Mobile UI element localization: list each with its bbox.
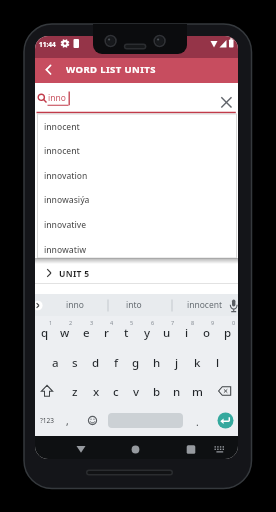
staticText: m (192, 384, 203, 400)
button[interactable]: w (55, 316, 75, 347)
button[interactable]: . (190, 414, 204, 430)
staticText: innovation (44, 170, 88, 182)
button[interactable]: d (86, 348, 106, 378)
staticText: p (224, 325, 232, 341)
staticText: h (153, 355, 161, 371)
button[interactable] (179, 438, 203, 458)
staticText: ?123 (40, 416, 54, 425)
button[interactable]: g (126, 348, 146, 378)
staticText: l (216, 355, 220, 371)
staticText: 4 (110, 319, 114, 326)
button[interactable] (108, 406, 183, 436)
button[interactable]: k (187, 348, 207, 378)
button[interactable]: y (137, 316, 157, 347)
staticText: g (132, 355, 140, 371)
staticText: d (92, 355, 100, 371)
button[interactable] (216, 92, 237, 113)
staticText: 1 (49, 319, 53, 326)
button[interactable] (41, 62, 57, 78)
staticText: innowatiw (44, 244, 87, 256)
button[interactable]: ?123 (36, 412, 58, 429)
button[interactable] (35, 377, 65, 406)
staticText: 9 (211, 319, 215, 326)
staticText: 5 (130, 319, 134, 326)
button[interactable]: innowatiw (38, 238, 236, 262)
staticText: w (60, 325, 70, 341)
button[interactable]: innocent (180, 296, 230, 314)
button[interactable]: innocent (38, 115, 236, 139)
button[interactable]: n (167, 377, 187, 406)
button[interactable]: h (147, 348, 167, 378)
staticText: . (196, 415, 199, 429)
button[interactable]: z (65, 377, 85, 406)
staticText: v (133, 384, 140, 400)
button[interactable]: p (218, 316, 238, 347)
staticText: 3 (90, 319, 94, 326)
button[interactable]: innovative (38, 213, 236, 237)
staticText: f (114, 355, 119, 371)
staticText: j (175, 355, 179, 371)
staticText: k (194, 355, 201, 371)
staticText: innocent (187, 299, 223, 311)
staticText: q (41, 325, 49, 341)
staticText: , (66, 414, 69, 428)
staticText: 7 (171, 319, 175, 326)
button[interactable]: r (96, 316, 116, 347)
button[interactable]: into (109, 296, 159, 314)
button[interactable]: e (76, 316, 96, 347)
staticText: 8 (191, 319, 195, 326)
button[interactable]: u (157, 316, 177, 347)
staticText: 6 (151, 319, 155, 326)
button[interactable]: innovation (38, 164, 236, 188)
button[interactable] (209, 438, 231, 458)
button[interactable] (124, 438, 148, 458)
button[interactable]: a (45, 348, 65, 378)
button[interactable]: inno (50, 296, 100, 314)
button[interactable]: i (177, 316, 197, 347)
button[interactable]: q (35, 316, 55, 347)
staticText: n (173, 384, 181, 400)
button[interactable]: l (208, 348, 228, 378)
button[interactable]: v (126, 377, 146, 406)
staticText: a (52, 355, 59, 371)
button[interactable] (214, 409, 237, 432)
staticText: inno (66, 299, 84, 311)
staticText: i (185, 325, 189, 341)
staticText: 0 (232, 319, 236, 326)
staticText: innocent (44, 145, 80, 157)
staticText: r (104, 325, 109, 341)
button[interactable]: s (65, 348, 85, 378)
button[interactable]: t (116, 316, 136, 347)
staticText: into (126, 299, 142, 311)
button[interactable]: innowasiýa (38, 188, 236, 212)
staticText: u (163, 325, 171, 341)
button[interactable] (69, 438, 93, 458)
button[interactable]: o (197, 316, 217, 347)
staticText: t (124, 325, 129, 341)
staticText: e (83, 325, 90, 341)
staticText: b (153, 384, 161, 400)
staticText: 11:44 (39, 40, 56, 49)
button[interactable]: innocent (38, 139, 236, 163)
staticText: innovative (44, 219, 87, 231)
staticText: inno (48, 92, 66, 104)
staticText: s (72, 355, 78, 371)
staticText: z (72, 384, 78, 400)
button[interactable]: f (106, 348, 126, 378)
button[interactable]: b (147, 377, 167, 406)
button[interactable]: , (60, 413, 74, 429)
button[interactable] (208, 377, 238, 406)
staticText: innowasiýa (44, 194, 90, 206)
button[interactable] (83, 409, 102, 432)
button[interactable]: j (167, 348, 187, 378)
button[interactable]: m (187, 377, 207, 406)
button[interactable]: c (106, 377, 126, 406)
button[interactable]: x (86, 377, 106, 406)
staticText: 2 (69, 319, 73, 326)
button[interactable]: UNIT 5 (35, 263, 238, 284)
staticText: o (203, 325, 211, 341)
staticText: y (144, 325, 151, 341)
staticText: WORD LIST UNITS (66, 63, 156, 76)
staticText: UNIT 5 (59, 268, 90, 280)
staticText: innocent (44, 121, 80, 133)
